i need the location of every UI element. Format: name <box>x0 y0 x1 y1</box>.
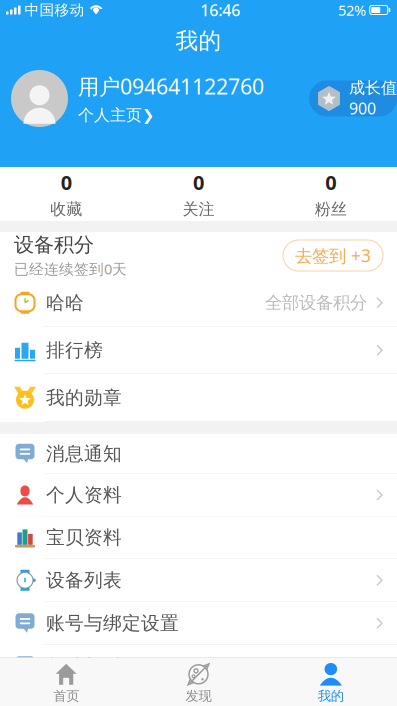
button[interactable]: 发现 <box>132 657 265 706</box>
button[interactable]: 宝贝资料 <box>0 516 397 559</box>
button[interactable]: 0 <box>265 159 397 229</box>
staticText: 用户094641122760 <box>78 72 264 100</box>
button[interactable]: 去签到 +3 <box>283 240 383 271</box>
button[interactable]: 哈哈 <box>0 279 397 327</box>
button[interactable]: 排行榜 <box>0 327 397 374</box>
staticText: 个人资料 <box>46 483 122 506</box>
staticText: 0 <box>61 169 72 195</box>
staticText: 关注 <box>182 199 214 219</box>
staticText: 个人主页 <box>78 105 142 125</box>
button[interactable]: 设备列表 <box>0 559 397 602</box>
staticText: 账号与绑定设置 <box>46 612 179 635</box>
staticText: 设备列表 <box>46 569 122 592</box>
staticText: ❯ <box>142 107 154 123</box>
staticText: 我的 <box>318 688 344 704</box>
button[interactable]: 0 <box>0 159 132 229</box>
staticText: 0 <box>193 169 204 195</box>
staticText: 消息通知 <box>46 442 122 465</box>
staticText: 成长值 <box>349 78 397 98</box>
staticText: 首页 <box>53 688 79 704</box>
staticText: 收藏 <box>50 199 82 219</box>
staticText: 我的勋章 <box>46 386 122 409</box>
staticText: 0 <box>325 169 336 195</box>
staticText: 52% <box>338 0 366 20</box>
staticText: 16:46 <box>200 0 240 21</box>
staticText: 粉丝 <box>315 199 347 219</box>
button[interactable]: 成长值 <box>309 80 397 116</box>
staticText: 哈哈 <box>46 291 84 314</box>
button[interactable]: 0 <box>132 159 265 229</box>
staticText: 发现 <box>185 688 211 704</box>
staticText: 排行榜 <box>46 339 103 362</box>
staticText: 设备积分 <box>14 232 94 257</box>
staticText: 中国移动 <box>24 1 84 19</box>
button[interactable]: 我的 <box>265 657 397 706</box>
button[interactable]: 帮助与反馈 <box>0 645 397 688</box>
staticText: 宝贝资料 <box>46 526 122 549</box>
button[interactable]: 我的勋章 <box>0 374 397 422</box>
staticText: 帮助与反馈 <box>46 655 141 678</box>
staticText: 已经连续签到0天 <box>14 259 127 278</box>
staticText: 900 <box>349 98 376 119</box>
staticText: 我的 <box>175 27 221 55</box>
button[interactable]: 账号与绑定设置 <box>0 602 397 645</box>
button[interactable]: 用户094641122760 <box>11 70 274 127</box>
button[interactable]: 个人资料 <box>0 474 397 516</box>
staticText: 全部设备积分 <box>265 292 367 313</box>
button[interactable]: 消息通知 <box>0 434 397 474</box>
staticText: 去签到 +3 <box>295 244 371 267</box>
button[interactable]: 首页 <box>0 657 132 706</box>
